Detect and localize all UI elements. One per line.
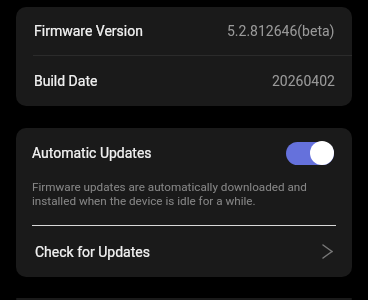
staticText: Check for Updates [35,244,150,260]
button[interactable]: Build Date [16,56,352,106]
staticText: Firmware updates are automatically downl… [32,180,336,208]
staticText: Automatic Updates [32,145,152,161]
staticText: 20260402 [272,73,335,89]
staticText: Build Date [34,73,98,89]
button[interactable]: Automatic Updates [16,128,352,178]
staticText: 5.2.812646(beta) [227,23,335,39]
button[interactable]: Check for Updates [16,226,352,277]
button[interactable]: Automatic Updates toggle, on [286,141,334,165]
button[interactable]: Firmware Version [16,7,352,55]
staticText: Firmware Version [34,23,143,39]
